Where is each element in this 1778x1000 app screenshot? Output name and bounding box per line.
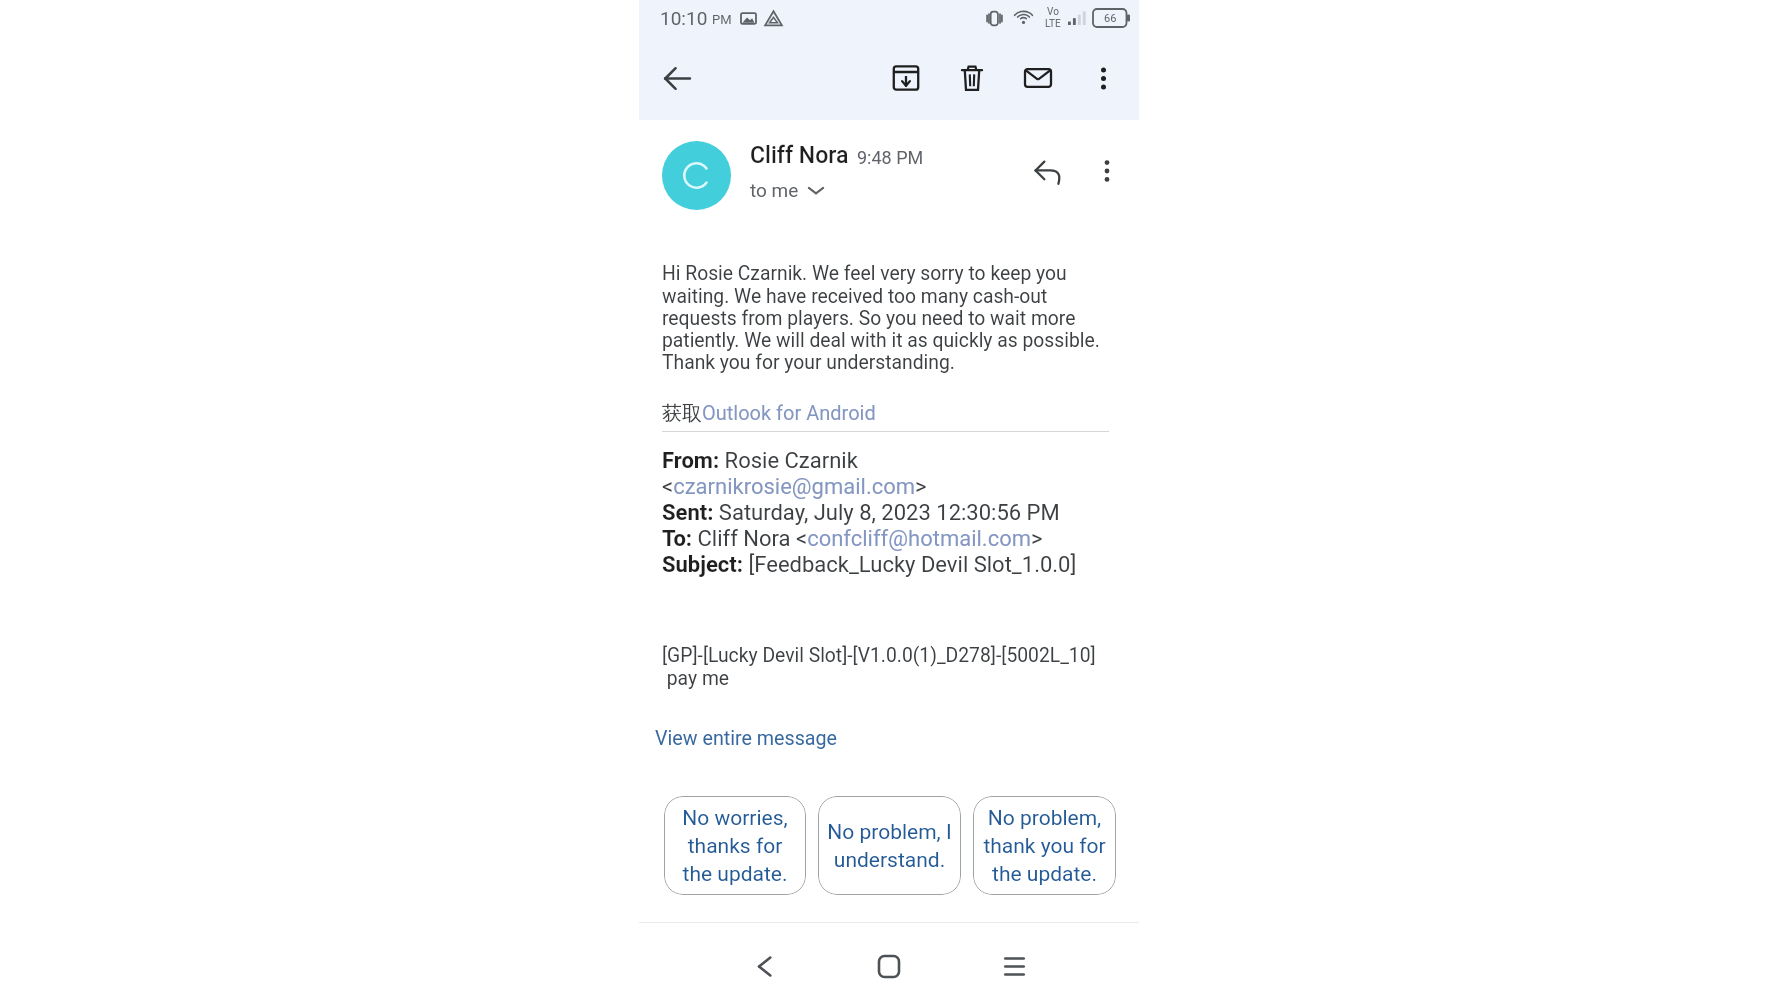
button[interactable]: Contact photo for Cliff Nora bbox=[662, 141, 731, 210]
button[interactable]: Back bbox=[653, 54, 701, 102]
staticText: PM bbox=[712, 12, 732, 27]
staticText: [GP]-[Lucky Devil Slot]-[V1.0.0(1)_D278]… bbox=[662, 644, 1096, 690]
button[interactable]: More options bbox=[1080, 55, 1126, 101]
button[interactable]: View entire message bbox=[655, 727, 838, 750]
button[interactable]: to me bbox=[750, 179, 830, 201]
staticText: From: Rosie Czarnik <czarnikrosie@gmail.… bbox=[662, 448, 1077, 578]
staticText: 获取Outlook for Android bbox=[662, 401, 876, 426]
staticText: to me bbox=[750, 179, 799, 201]
button[interactable]: Delete bbox=[948, 54, 996, 102]
staticText: View entire message bbox=[655, 727, 838, 750]
button[interactable]: More options bbox=[1084, 148, 1130, 187]
button[interactable]: Home bbox=[859, 936, 919, 996]
button[interactable]: No problem, thank you for the update. bbox=[973, 796, 1116, 895]
button[interactable]: Archive bbox=[882, 54, 930, 102]
button[interactable]: Reply bbox=[1024, 148, 1072, 189]
button[interactable]: Recent apps bbox=[984, 936, 1044, 996]
staticText: 9:48 PM bbox=[857, 147, 924, 168]
staticText: LTE bbox=[1045, 18, 1061, 30]
staticText: Vo bbox=[1047, 6, 1059, 18]
staticText: No problem, thank you for the update. bbox=[983, 806, 1106, 886]
staticText: Cliff Nora bbox=[750, 142, 849, 169]
button[interactable]: Mark as unread bbox=[1014, 54, 1062, 102]
button[interactable]: Back bbox=[734, 936, 794, 996]
staticText: Hi Rosie Czarnik. We feel very sorry to … bbox=[662, 262, 1116, 373]
staticText: 66 bbox=[1104, 12, 1117, 25]
button[interactable]: No worries, thanks for the update. bbox=[664, 796, 806, 895]
staticText: No problem, I understand. bbox=[827, 820, 952, 872]
staticText: 10:10 bbox=[660, 7, 708, 29]
staticText: No worries, thanks for the update. bbox=[682, 806, 788, 886]
button[interactable]: No problem, I understand. bbox=[818, 796, 961, 895]
